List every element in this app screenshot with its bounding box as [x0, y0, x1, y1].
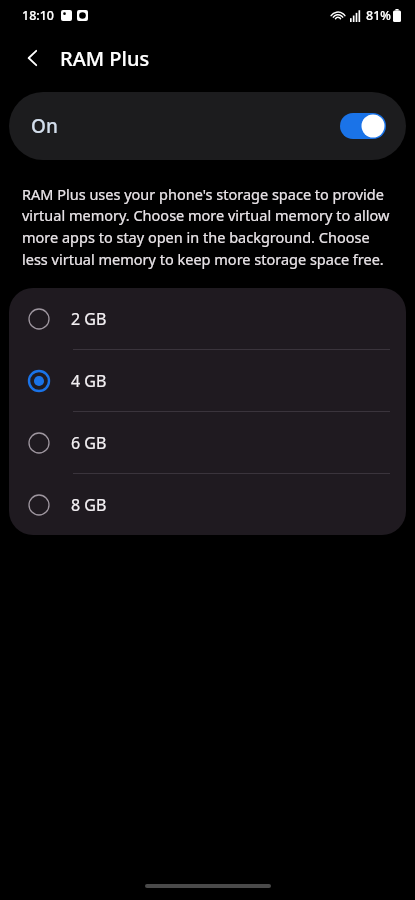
staticText: On	[31, 113, 58, 139]
button[interactable]: 8 GB	[9, 474, 406, 535]
button[interactable]: 2 GB	[9, 288, 406, 349]
staticText: 81%	[366, 7, 391, 24]
button[interactable]: 4 GB	[9, 350, 406, 411]
staticText: 6 GB	[71, 432, 107, 454]
staticText: 18:10	[22, 7, 55, 24]
staticText: RAM Plus uses your phone's storage space…	[22, 184, 393, 270]
button[interactable]: 6 GB	[9, 412, 406, 473]
staticText: 4 GB	[71, 370, 107, 392]
button[interactable]: On	[9, 92, 406, 160]
staticText: 2 GB	[71, 308, 107, 330]
staticText: RAM Plus	[60, 45, 150, 72]
staticText: 8 GB	[71, 494, 107, 516]
button[interactable]: Back	[12, 37, 54, 79]
